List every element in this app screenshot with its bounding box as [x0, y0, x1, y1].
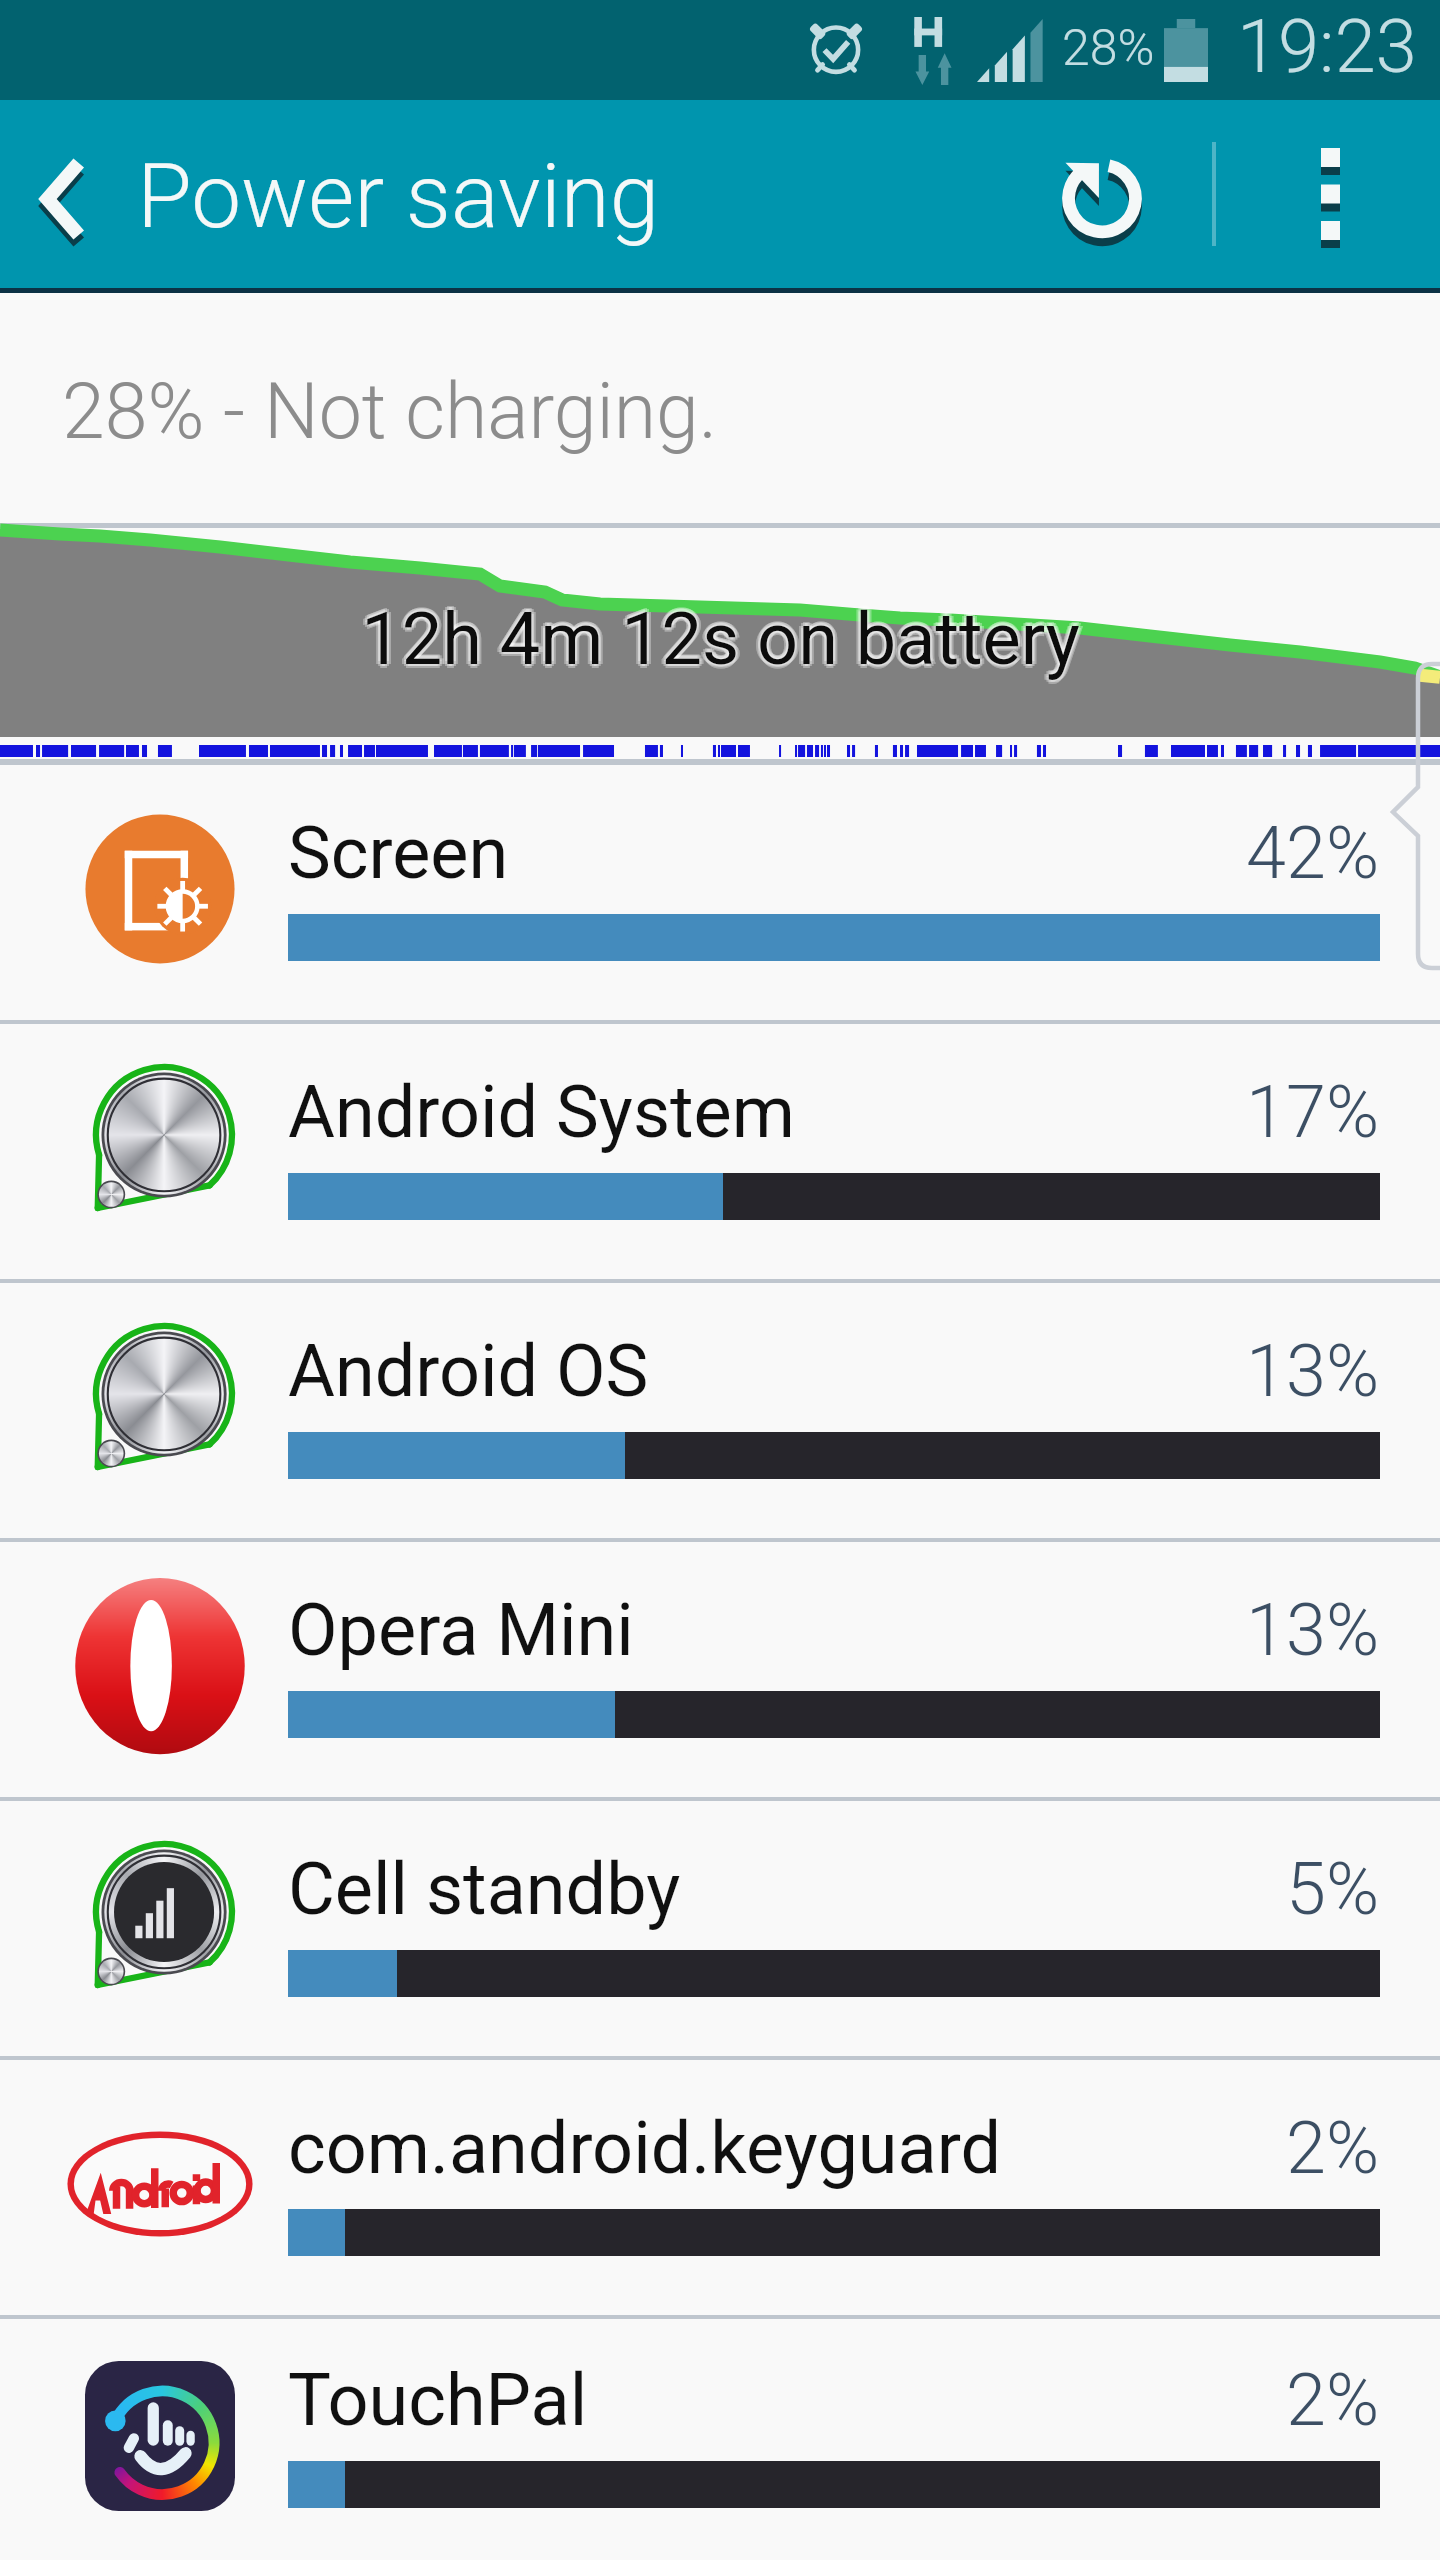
staticText: 12h 4m 12s on battery [357, 597, 1076, 681]
staticText: 12h 4m 12s on battery [361, 597, 1080, 681]
staticText: 28% [1062, 19, 1155, 78]
staticText: TouchPal [288, 2358, 588, 2442]
button[interactable]: Opera Mini [0, 1538, 1440, 1797]
staticText: 12h 4m 12s on battery [359, 594, 1078, 678]
staticText: 12h 4m 12s on battery [361, 601, 1080, 685]
staticText: 13% [1246, 1329, 1380, 1413]
button[interactable]: More options [1250, 100, 1410, 288]
staticText: 19:23 [1237, 3, 1417, 90]
button[interactable]: Navigate up [0, 100, 124, 288]
staticText: 12h 4m 12s on battery [365, 597, 1084, 681]
button[interactable]: TouchPal [0, 2315, 1440, 2560]
button[interactable]: Android OS [0, 1279, 1440, 1538]
staticText: Screen [288, 811, 509, 895]
staticText: com.android.keyguard [288, 2106, 1002, 2190]
staticText: 12h 4m 12s on battery [359, 599, 1078, 683]
button[interactable]: com.android.keyguard [0, 2056, 1440, 2315]
button[interactable]: Cell standby [0, 1797, 1440, 2056]
staticText: Cell standby [288, 1847, 681, 1931]
staticText: 5% [1286, 1847, 1380, 1931]
button[interactable]: Android System [0, 1020, 1440, 1279]
staticText: Power saving [137, 144, 660, 248]
staticText: Android OS [288, 1329, 649, 1413]
staticText: 12h 4m 12s on battery [363, 594, 1082, 678]
staticText: 13% [1246, 1588, 1380, 1672]
staticText: 17% [1246, 1070, 1380, 1154]
staticText: 2% [1286, 2358, 1380, 2442]
staticText: 42% [1246, 811, 1380, 895]
button[interactable]: Screen [0, 761, 1440, 1020]
staticText: Android System [288, 1070, 795, 1154]
staticText: 12h 4m 12s on battery [363, 599, 1082, 683]
staticText: Opera Mini [288, 1588, 634, 1672]
staticText: 12h 4m 12s on battery [361, 593, 1080, 677]
button[interactable]: Refresh [1024, 100, 1180, 288]
staticText: 2% [1286, 2106, 1380, 2190]
staticText: 28% - Not charging. [62, 367, 718, 457]
